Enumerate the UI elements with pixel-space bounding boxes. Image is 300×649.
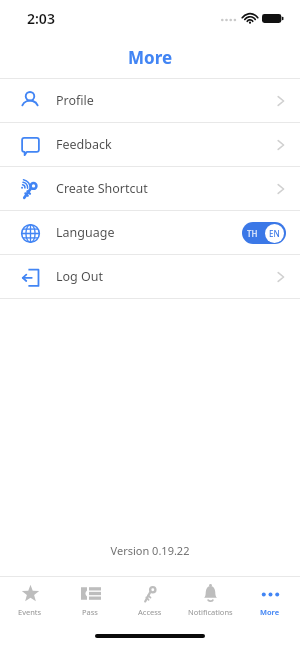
staticText: More	[128, 46, 173, 69]
staticText: TH	[247, 228, 258, 239]
staticText: Feedback	[56, 136, 112, 153]
staticText: Pass	[82, 607, 98, 617]
button[interactable]: Notifications	[180, 577, 240, 623]
button[interactable]: Create Shortcut	[0, 167, 300, 210]
button[interactable]: Profile	[0, 79, 300, 122]
button[interactable]: Access	[120, 577, 180, 623]
button[interactable]: Pass	[60, 577, 120, 623]
staticText: Language	[56, 224, 115, 241]
staticText: Access	[138, 607, 162, 617]
button[interactable]: Log Out	[0, 255, 300, 298]
staticText: 2:03	[27, 9, 55, 28]
button[interactable]: Feedback	[0, 123, 300, 166]
button[interactable]: Language	[0, 211, 300, 254]
staticText: Profile	[56, 92, 94, 109]
button[interactable]: Switch language	[242, 222, 286, 244]
staticText: Version 0.19.22	[0, 543, 300, 558]
staticText: EN	[269, 228, 280, 239]
staticText: Log Out	[56, 268, 104, 285]
staticText: Notifications	[188, 607, 233, 617]
staticText: More	[260, 607, 280, 617]
staticText: Events	[18, 607, 42, 617]
button[interactable]: More	[240, 577, 300, 623]
button[interactable]: Events	[0, 577, 60, 623]
staticText: Create Shortcut	[56, 180, 148, 197]
